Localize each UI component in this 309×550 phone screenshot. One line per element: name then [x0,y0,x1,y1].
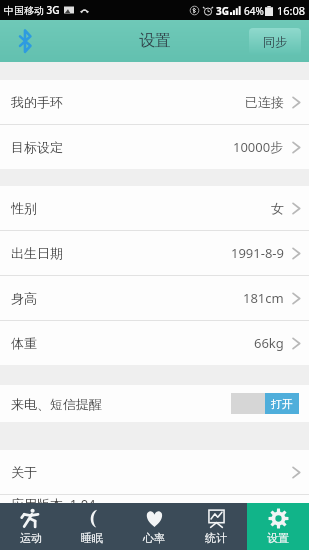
button[interactable]: 出生日期 [0,231,309,275]
staticText: 66kg [254,334,284,352]
button[interactable]: Bluetooth [10,26,40,56]
staticText: 16:08 [277,3,306,18]
staticText: 出生日期 [11,245,63,261]
button[interactable]: 心率 [123,503,185,550]
staticText: 性别 [11,200,37,216]
button[interactable]: 运动 [0,503,61,550]
staticText: 统计 [205,531,227,545]
button[interactable]: 关于 [0,450,309,494]
button[interactable]: 打开 [231,393,299,414]
button[interactable]: 目标设定 [0,125,309,169]
button[interactable]: 我的手环 [0,80,309,124]
button[interactable]: 来电、短信提醒 [0,385,309,422]
staticText: 设置 [139,31,171,51]
staticText: 181cm [243,289,284,307]
button[interactable]: 统计 [185,503,247,550]
staticText: 身高 [11,290,37,306]
staticText: 女 [271,200,284,216]
staticText: 我的手环 [11,94,63,110]
staticText: 目标设定 [11,139,63,155]
staticText: 应用版本 1.04 [11,495,96,503]
staticText: 中国移动 3G [4,3,60,17]
staticText: 1991-8-9 [231,244,284,262]
button[interactable]: 性别 [0,186,309,230]
button[interactable]: 睡眠 [61,503,123,550]
button[interactable]: 体重 [0,321,309,365]
staticText: 同步 [263,34,287,49]
staticText: 睡眠 [81,531,103,545]
button[interactable]: 身高 [0,276,309,320]
button[interactable]: 同步 [249,28,301,55]
staticText: 已连接 [245,94,284,110]
staticText: 关于 [11,464,37,480]
staticText: 体重 [11,335,37,351]
button[interactable]: 应用版本 1.04 [0,495,309,503]
staticText: 心率 [143,531,165,545]
staticText: 3G [216,4,229,18]
staticText: 10000步 [233,138,284,156]
staticText: 运动 [20,531,42,545]
staticText: 设置 [267,531,289,545]
staticText: 来电、短信提醒 [11,396,102,412]
button[interactable]: 设置 [247,503,309,550]
staticText: 打开 [271,397,293,411]
staticText: 64% [244,4,264,18]
